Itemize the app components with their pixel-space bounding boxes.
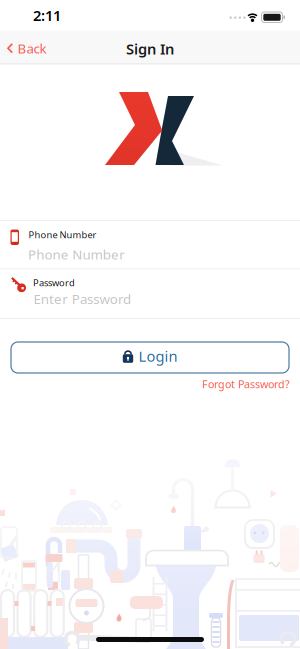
staticText: Sign In [126,39,174,58]
staticText: Phone Number [28,228,96,241]
staticText: Login [138,346,177,366]
staticText: Back [17,39,46,57]
button[interactable]: Forgot Password? [202,377,290,391]
staticText: Enter Password [33,290,131,308]
button[interactable]: Back [7,39,46,57]
staticText: Password [33,276,75,289]
staticText: 2:11 [33,5,61,25]
staticText: Phone Number [28,245,125,263]
button[interactable]: Login [11,342,289,373]
staticText: Forgot Password? [202,377,290,391]
button[interactable]: Home [96,637,204,642]
